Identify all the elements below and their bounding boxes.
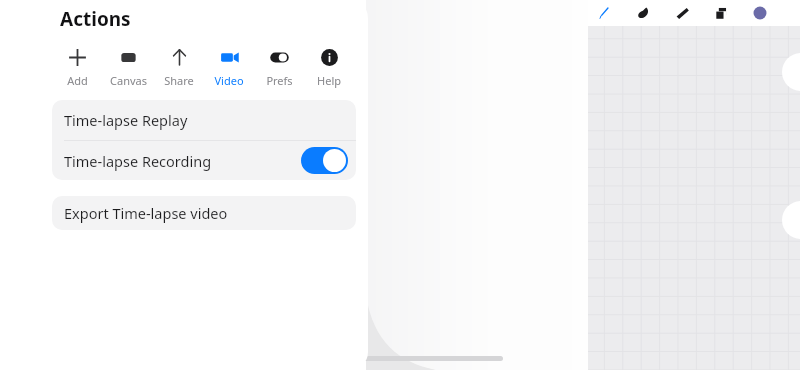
button[interactable]: Canvas	[103, 43, 154, 90]
staticText: Time-lapse Replay	[64, 110, 188, 130]
button[interactable]: Time-lapse Replay	[52, 100, 356, 140]
button[interactable]: Video	[204, 43, 254, 90]
button[interactable]: Layers	[703, 0, 739, 26]
button[interactable]: Add	[52, 43, 103, 90]
button[interactable]: Colour	[742, 0, 778, 26]
staticText: Export Time-lapse video	[64, 203, 228, 223]
staticText: Add	[67, 73, 88, 88]
staticText: Time-lapse Recording	[64, 151, 301, 171]
staticText: Help	[317, 73, 341, 88]
button[interactable]: Time-lapse Recording toggle	[301, 147, 348, 174]
staticText: Prefs	[266, 73, 293, 88]
button[interactable]: Help	[304, 43, 354, 90]
button[interactable]: Prefs	[254, 43, 304, 90]
button[interactable]: Share	[154, 43, 204, 90]
staticText: Video	[214, 73, 244, 88]
button[interactable]: Eraser	[664, 0, 700, 26]
button[interactable]: Time-lapse Recording	[52, 141, 356, 180]
button[interactable]: Smudge	[625, 0, 661, 26]
staticText: Actions	[60, 6, 131, 32]
button[interactable]: Export Time-lapse video	[52, 196, 356, 230]
staticText: Share	[164, 73, 194, 88]
button[interactable]: Brush	[586, 0, 622, 26]
staticText: Canvas	[110, 73, 147, 88]
